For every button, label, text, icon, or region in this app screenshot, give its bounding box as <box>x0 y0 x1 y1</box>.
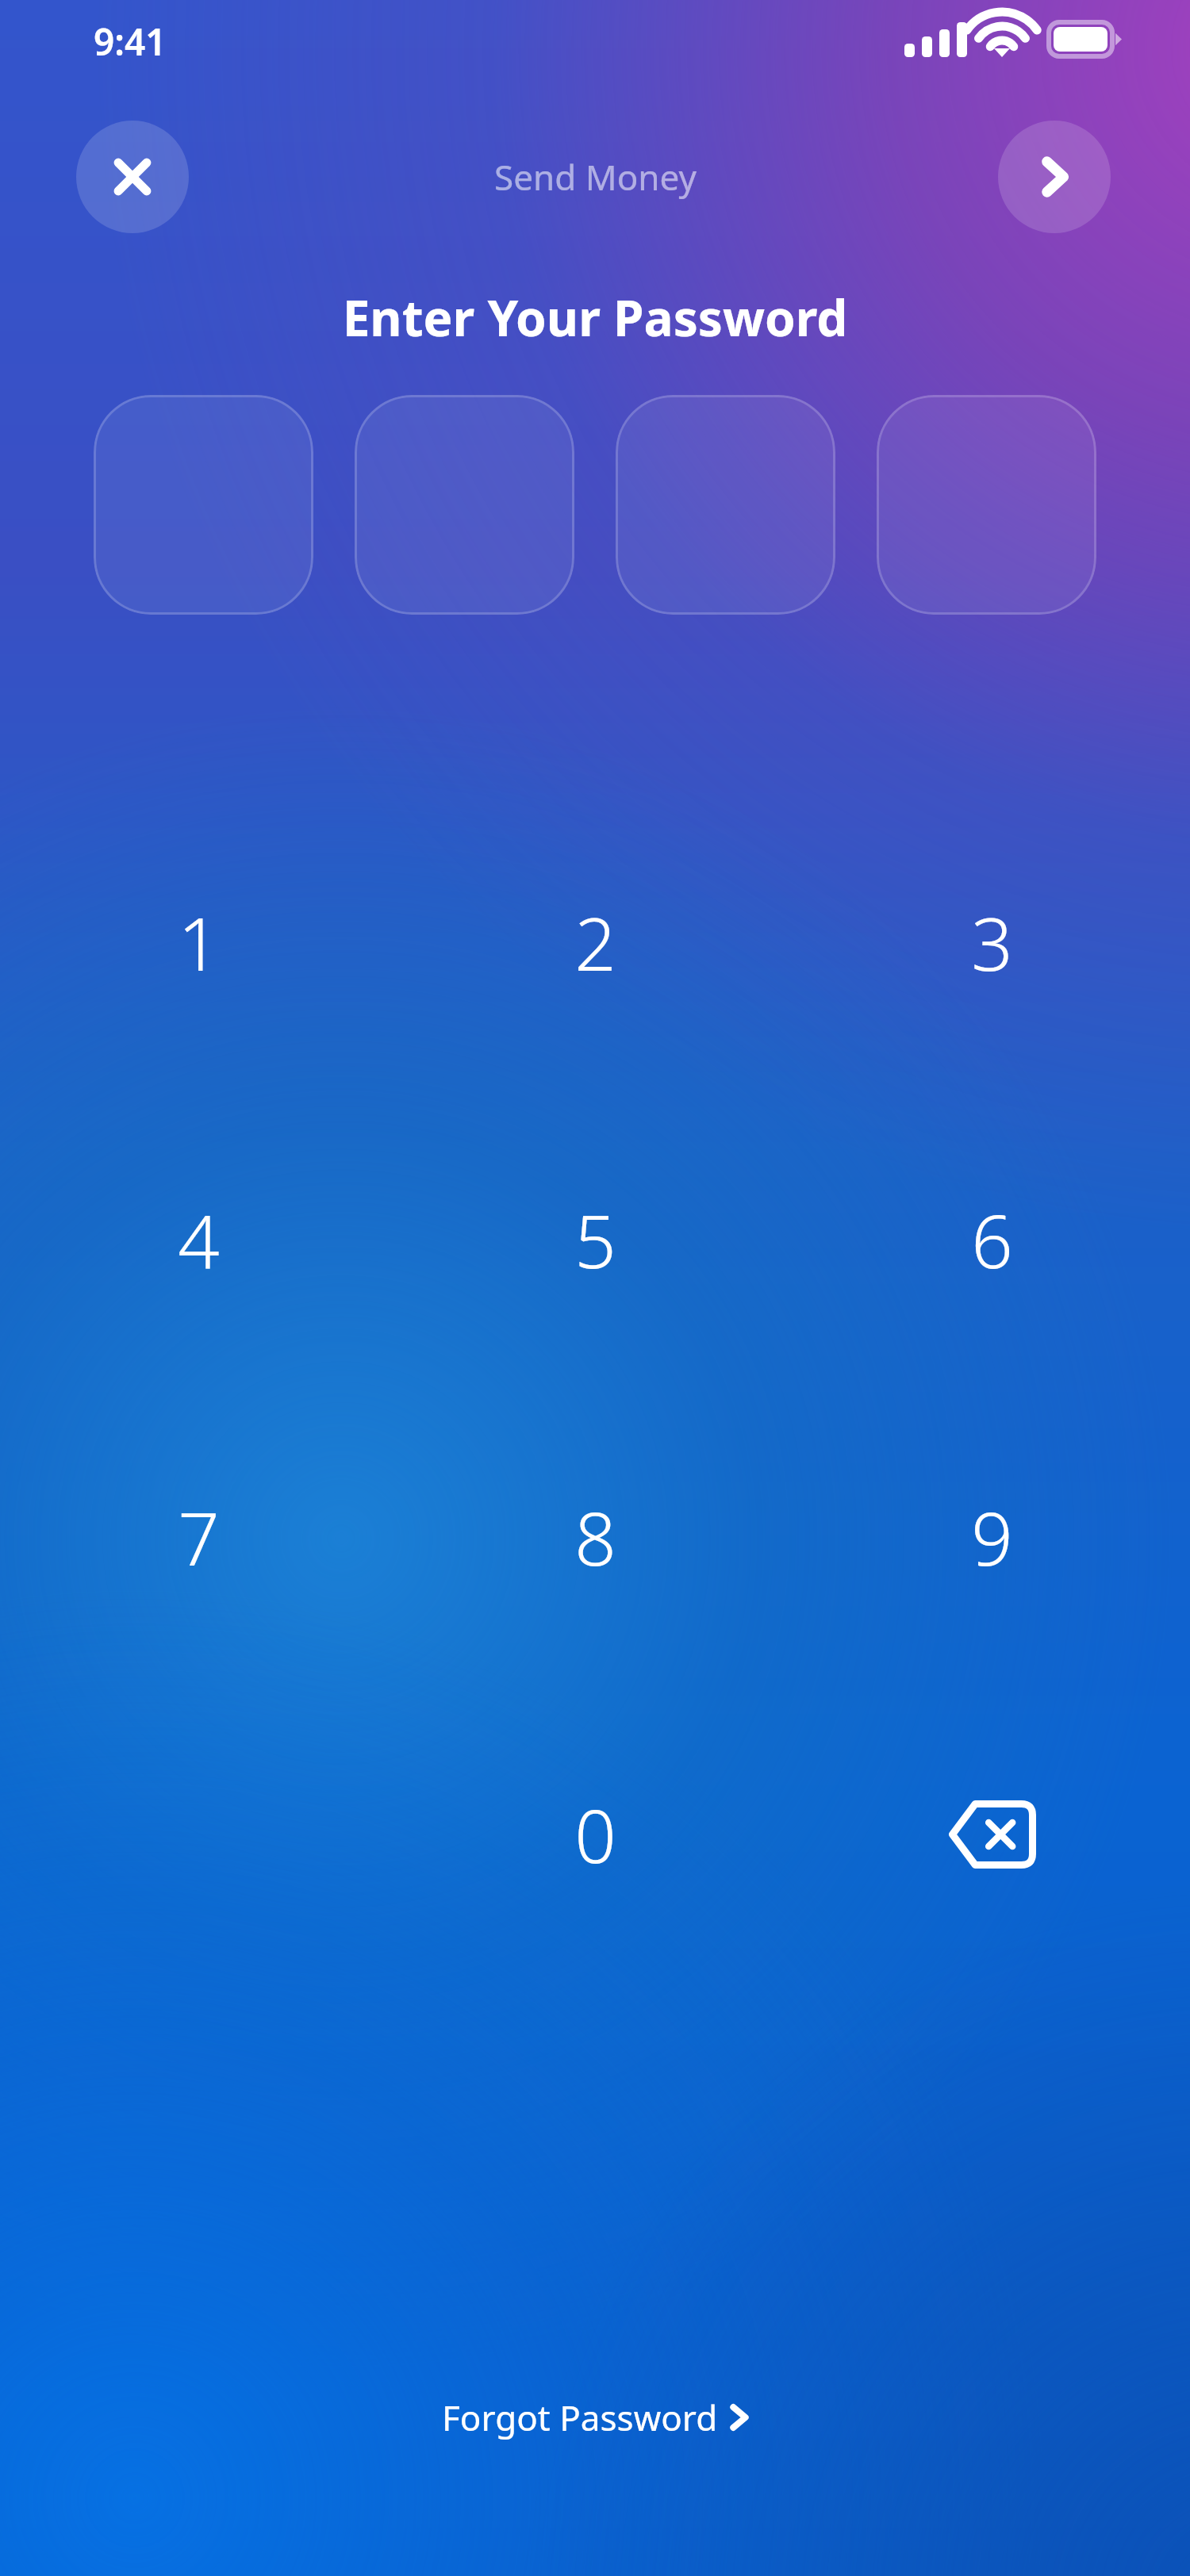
staticText: 3 <box>971 893 1013 992</box>
button[interactable]: 1 <box>107 851 290 1033</box>
staticText: 6 <box>971 1190 1013 1290</box>
staticText: 2 <box>574 893 616 992</box>
staticText: 9:41 <box>94 17 167 67</box>
staticText: 5 <box>574 1190 616 1290</box>
button[interactable]: 9 <box>900 1446 1083 1628</box>
button[interactable]: 2 <box>504 851 686 1033</box>
staticText: Forgot Password <box>442 2394 718 2441</box>
staticText: 4 <box>178 1190 220 1290</box>
staticText: Send Money <box>494 153 697 201</box>
button[interactable]: 8 <box>504 1446 686 1628</box>
button[interactable]: Forgot Password <box>423 2379 767 2455</box>
staticText: 9 <box>971 1488 1013 1587</box>
button[interactable]: Backspace <box>900 1743 1083 1926</box>
staticText: 0 <box>574 1785 616 1884</box>
staticText: 8 <box>574 1488 616 1587</box>
button[interactable]: 3 <box>900 851 1083 1033</box>
button[interactable]: 0 <box>504 1743 686 1926</box>
staticText: 1 <box>178 893 220 992</box>
button[interactable]: Next <box>998 121 1111 233</box>
staticText: 7 <box>178 1488 220 1587</box>
button[interactable]: 5 <box>504 1148 686 1331</box>
staticText: Enter Your Password <box>0 284 1190 351</box>
button[interactable]: Close <box>76 121 189 233</box>
button[interactable]: 6 <box>900 1148 1083 1331</box>
button[interactable]: 4 <box>107 1148 290 1331</box>
button[interactable]: 7 <box>107 1446 290 1628</box>
